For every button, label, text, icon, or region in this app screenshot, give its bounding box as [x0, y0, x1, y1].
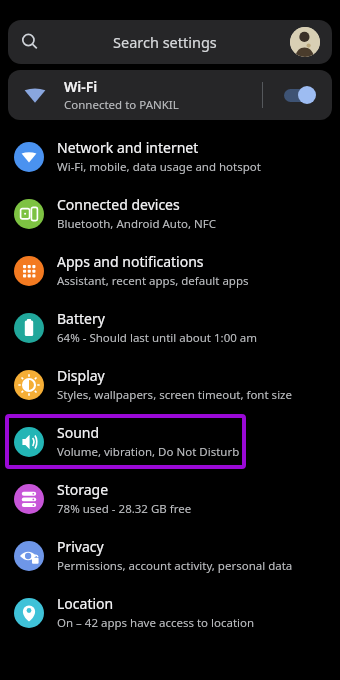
staticText: Storage — [57, 480, 109, 499]
staticText: Assistant, recent apps, default apps — [57, 273, 249, 289]
staticText: Wi-Fi, mobile, data usage and hotspot — [57, 159, 261, 175]
staticText: On – 42 apps have access to location — [57, 615, 255, 631]
staticText: Network and internet — [57, 138, 199, 157]
staticText: Connected to PANKIL — [64, 97, 179, 113]
staticText: Styles, wallpapers, screen timeout, font… — [57, 387, 292, 403]
button[interactable]: Wi-Fi — [8, 70, 332, 120]
staticText: Connected devices — [57, 195, 180, 214]
staticText: Location — [57, 594, 114, 613]
button[interactable]: Battery — [0, 299, 340, 356]
button[interactable]: Search settings — [8, 20, 332, 64]
staticText: Volume, vibration, Do Not Disturb — [57, 444, 240, 460]
button[interactable]: Display — [0, 356, 340, 413]
staticText: Bluetooth, Android Auto, NFC — [57, 216, 217, 232]
staticText: 78% used - 28.32 GB free — [57, 501, 192, 517]
button[interactable]: Privacy — [0, 527, 340, 584]
button[interactable]: Sound — [0, 413, 340, 470]
staticText: 64% - Should last until about 1:00 am — [57, 330, 258, 346]
staticText: Battery — [57, 309, 105, 328]
button[interactable]: Wi-Fi toggle — [282, 83, 324, 107]
staticText: Wi-Fi — [64, 77, 98, 96]
staticText: Display — [57, 366, 105, 385]
button[interactable]: Apps and notifications — [0, 242, 340, 299]
button[interactable]: Network and internet — [0, 128, 340, 185]
button[interactable]: Storage — [0, 470, 340, 527]
staticText: Sound — [57, 423, 100, 442]
button[interactable]: Account — [290, 27, 320, 57]
button[interactable]: Location — [0, 584, 340, 641]
staticText: Privacy — [57, 537, 104, 556]
staticText: Search settings — [113, 32, 217, 52]
button[interactable]: Connected devices — [0, 185, 340, 242]
staticText: Apps and notifications — [57, 252, 204, 271]
staticText: Permissions, account activity, personal … — [57, 558, 293, 574]
